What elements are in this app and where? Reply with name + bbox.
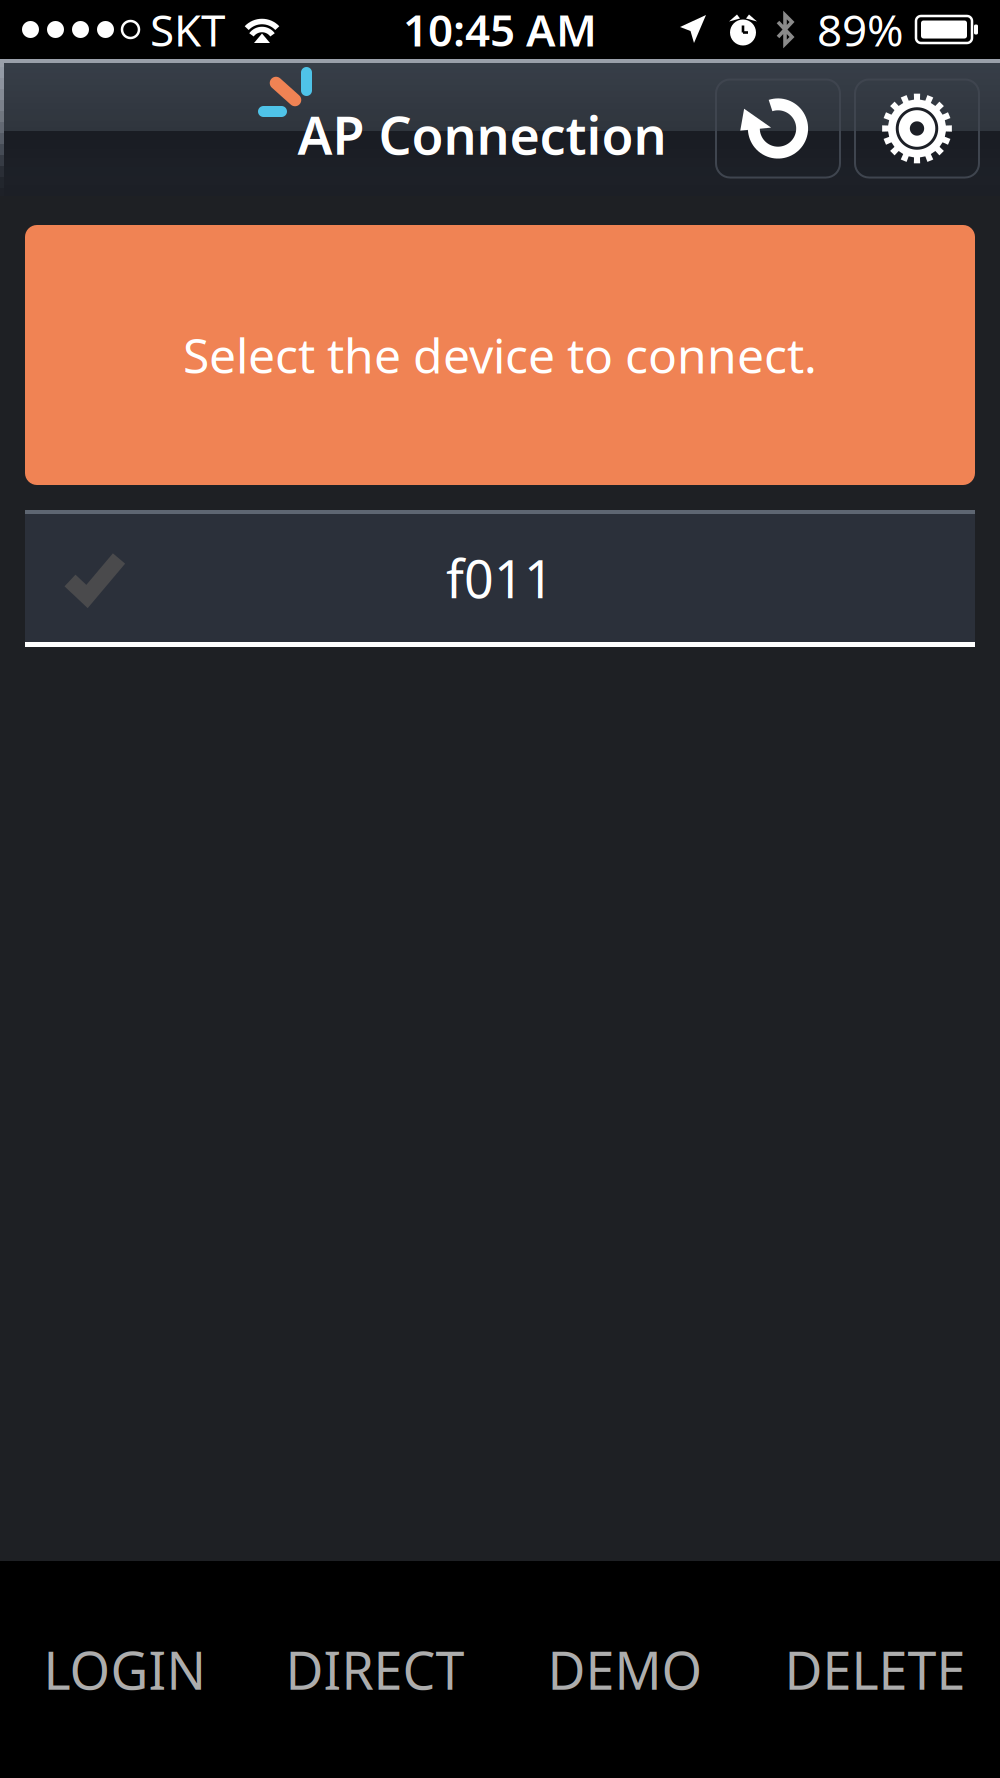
staticText: DELETE xyxy=(784,1635,965,1704)
button[interactable]: DIRECT xyxy=(250,1561,500,1778)
staticText: 89% xyxy=(817,0,904,59)
staticText: AP Connection xyxy=(297,100,666,169)
button[interactable]: Settings xyxy=(855,79,979,177)
staticText: 10:45 AM xyxy=(403,0,597,59)
button[interactable]: f011 xyxy=(0,510,1000,647)
button[interactable]: DEMO xyxy=(500,1561,750,1778)
staticText: Select the device to connect. xyxy=(183,323,817,387)
staticText: DIRECT xyxy=(285,1635,464,1704)
button[interactable]: DELETE xyxy=(750,1561,1000,1778)
staticText: DEMO xyxy=(547,1635,702,1704)
staticText: f011 xyxy=(446,543,554,613)
staticText: SKT xyxy=(150,0,225,59)
button[interactable]: LOGIN xyxy=(0,1561,250,1778)
button[interactable]: Refresh xyxy=(716,79,840,177)
staticText: LOGIN xyxy=(43,1635,206,1704)
